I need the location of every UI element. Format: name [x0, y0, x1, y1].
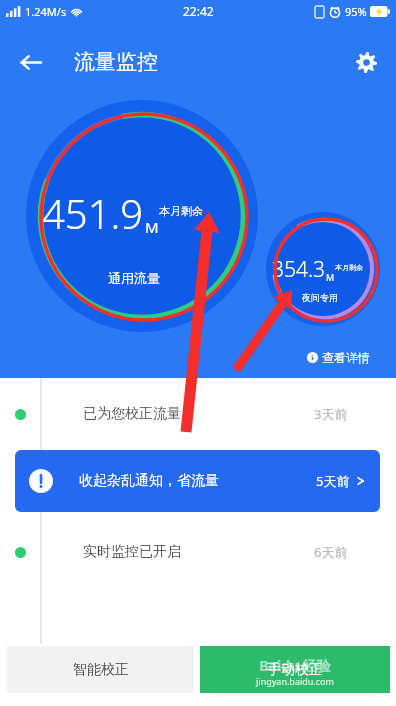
- button[interactable]: 智能校正: [7, 646, 194, 693]
- staticText: 本月剩余: [159, 204, 203, 218]
- staticText: 已为您校正流量: [83, 405, 181, 423]
- staticText: 通用流量: [108, 270, 160, 286]
- staticText: M: [326, 271, 335, 283]
- staticText: 查看详情: [322, 350, 370, 365]
- staticText: 354.3: [272, 255, 326, 284]
- button[interactable]: Back: [8, 40, 52, 84]
- staticText: 95%: [345, 4, 367, 19]
- button[interactable]: 查看详情: [305, 349, 372, 366]
- staticText: 流量监控: [74, 49, 158, 75]
- staticText: 451.9: [42, 186, 144, 240]
- staticText: 3天前: [314, 405, 348, 423]
- button[interactable]: 实时监控已开启: [0, 533, 396, 571]
- staticText: 夜间专用: [302, 292, 338, 303]
- staticText: 22:42: [183, 3, 214, 19]
- staticText: Baidu 经验: [259, 656, 331, 675]
- button[interactable]: 已为您校正流量: [0, 395, 396, 433]
- staticText: 手动校正: [267, 661, 323, 679]
- button[interactable]: Settings: [344, 40, 388, 84]
- staticText: 实时监控已开启: [83, 543, 181, 561]
- button[interactable]: 手动校正: [200, 646, 390, 693]
- staticText: 本月剩余: [335, 263, 363, 272]
- staticText: M: [145, 217, 159, 237]
- staticText: 收起杂乱通知，省流量: [79, 472, 219, 490]
- staticText: 5天前: [316, 472, 350, 490]
- staticText: 6天前: [314, 543, 348, 561]
- button[interactable]: 收起杂乱通知，省流量: [15, 450, 380, 512]
- staticText: 1.24M/s: [25, 4, 67, 19]
- staticText: 智能校正: [73, 661, 129, 679]
- staticText: jingyan.baidu.com: [256, 675, 334, 687]
